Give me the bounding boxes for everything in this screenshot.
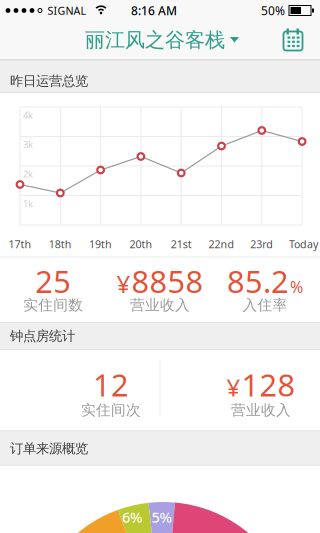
staticText: 85.2 <box>227 261 289 301</box>
staticText: 实住间数 <box>23 296 83 314</box>
staticText: 50% <box>261 2 285 18</box>
staticText: 8:16 AM <box>131 2 177 18</box>
staticText: 丽江风之谷客栈 <box>85 28 225 52</box>
staticText: 17th <box>8 237 31 251</box>
staticText: 6% <box>122 507 142 527</box>
staticText: 3k <box>23 138 33 151</box>
staticText: 8858 <box>131 261 203 301</box>
button[interactable]: 丽江风之谷客栈 <box>85 28 239 52</box>
staticText: 23rd <box>250 237 273 251</box>
staticText: 20th <box>129 237 152 251</box>
staticText: 128 <box>241 364 295 405</box>
staticText: % <box>290 276 303 297</box>
staticText: 营业收入 <box>130 296 190 314</box>
staticText: 19th <box>89 237 112 251</box>
staticText: 25 <box>35 261 71 301</box>
staticText: 入住率 <box>242 296 287 314</box>
staticText: 昨日运营总览 <box>10 73 88 89</box>
staticText: 18th <box>49 237 72 251</box>
button[interactable]: Calendar <box>279 27 307 55</box>
staticText: 营业收入 <box>231 401 291 419</box>
staticText: 实住间次 <box>81 401 141 419</box>
staticText: 21st <box>171 237 192 251</box>
staticText: SIGNAL <box>47 3 86 18</box>
staticText: 22nd <box>208 237 234 251</box>
staticText: 2k <box>23 168 33 180</box>
staticText: ¥ <box>116 268 130 300</box>
staticText: 钟点房统计 <box>10 328 75 344</box>
staticText: 4k <box>23 109 33 121</box>
staticText: ¥ <box>226 371 240 403</box>
staticText: 订单来源概览 <box>10 440 88 457</box>
staticText: 12 <box>93 364 129 405</box>
staticText: 1k <box>23 197 33 210</box>
staticText: Today <box>289 237 318 251</box>
staticText: 5% <box>151 507 171 527</box>
